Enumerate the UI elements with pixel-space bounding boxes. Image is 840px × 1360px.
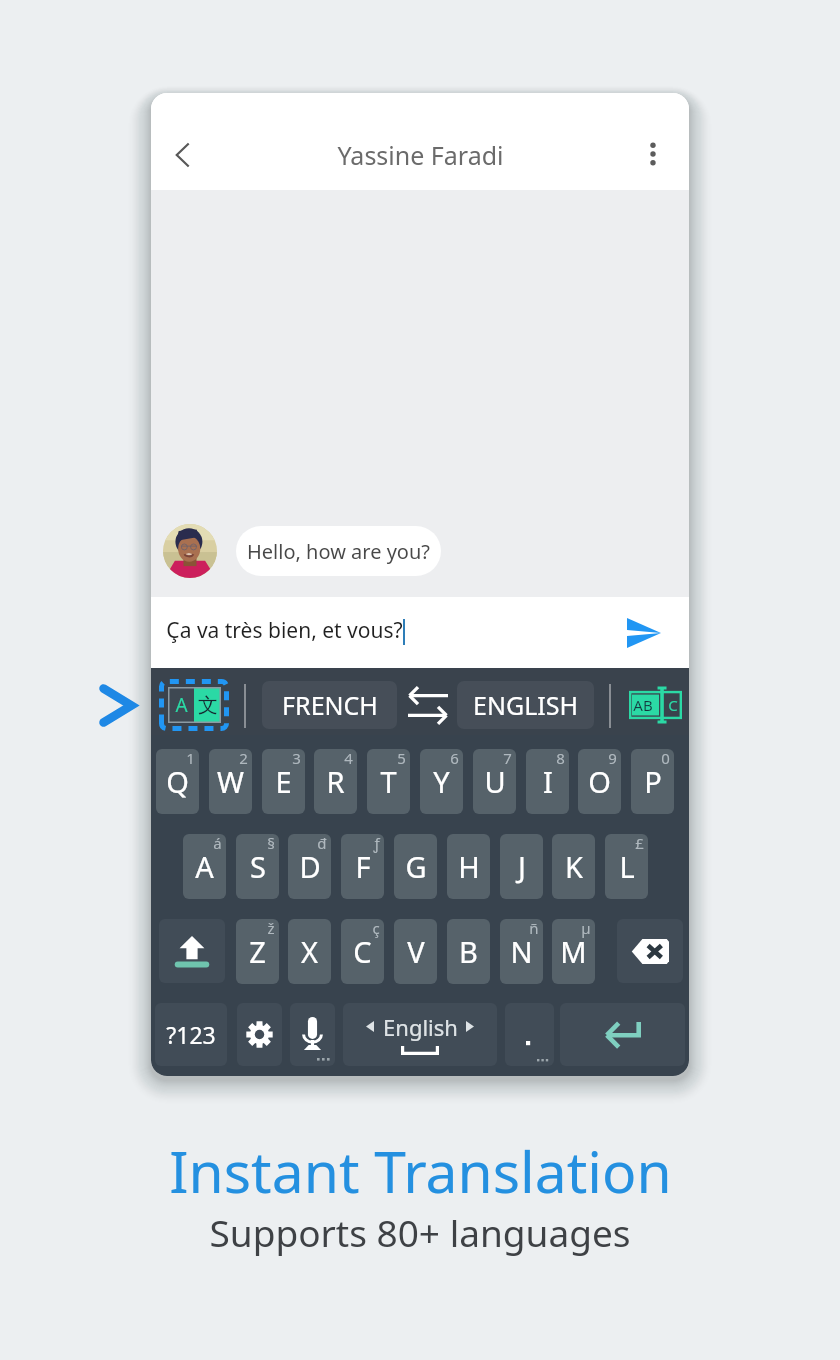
button[interactable]: P [631,749,674,814]
button[interactable]: K [552,834,595,899]
staticText: T [380,762,397,801]
staticText: H [458,847,480,886]
staticText: 4 [344,749,353,768]
staticText: B [459,932,478,971]
button[interactable]: I [526,749,569,814]
button[interactable] [505,1003,554,1066]
staticText: W [217,762,244,801]
staticText: R [326,762,345,801]
staticText: A [195,847,214,886]
staticText: ž [267,919,275,938]
button[interactable]: Enter [560,1003,685,1066]
staticText: L [619,847,635,886]
staticText: M [560,932,587,971]
staticText: ƒ [373,834,380,853]
staticText: P [644,762,662,801]
button[interactable]: J [500,834,543,899]
staticText: V [407,932,425,971]
button[interactable]: V [394,919,437,984]
button[interactable]: ?123 [155,1003,227,1066]
button[interactable]: Translate [159,679,229,731]
button[interactable]: ENGLISH [457,681,594,729]
staticText: 5 [397,749,406,768]
staticText: Hello, how are you? [247,538,430,565]
staticText: 文 [198,693,218,718]
staticText: C [353,932,372,971]
staticText: U [484,762,506,801]
staticText: I [543,762,553,801]
staticText: E [275,762,292,801]
staticText: English [383,1012,458,1042]
button[interactable]: D [288,834,331,899]
staticText: Ça va très bien, et vous? [166,616,403,645]
staticText: 6 [450,749,459,768]
button[interactable]: Send [619,608,669,658]
staticText: Z [249,932,266,971]
staticText: đ [317,834,327,853]
button[interactable]: Voice input [290,1003,335,1066]
button[interactable]: More options [628,129,678,179]
staticText: AB [633,695,653,715]
button[interactable]: G [394,834,437,899]
button[interactable]: O [578,749,621,814]
staticText: £ [635,834,644,853]
staticText: F [355,847,371,886]
button[interactable]: W [209,749,252,814]
button[interactable]: T [367,749,410,814]
button[interactable]: Back [155,127,211,183]
staticText: D [299,847,321,886]
staticText: J [518,847,526,886]
button[interactable]: R [314,749,357,814]
button[interactable]: S [236,834,279,899]
staticText: 3 [292,749,301,768]
staticText: 9 [608,749,617,768]
staticText: Yassine Faradi [337,138,504,172]
button[interactable]: Swap languages [404,682,452,728]
button[interactable]: Q [156,749,199,814]
staticText: X [301,932,318,971]
staticText: µ [581,919,591,938]
staticText: 2 [239,749,248,768]
staticText: ENGLISH [473,688,578,722]
staticText: O [588,762,611,801]
button[interactable]: FRENCH [262,681,397,729]
staticText: 8 [556,749,565,768]
staticText: S [250,847,266,886]
button[interactable]: E [262,749,305,814]
staticText: Q [166,762,189,801]
staticText: N [510,932,533,971]
staticText: 1 [186,749,195,768]
button[interactable]: Y [420,749,463,814]
staticText: Supports 80+ languages [209,1207,631,1257]
button[interactable]: F [341,834,384,899]
staticText: Y [433,762,450,801]
button[interactable]: N [500,919,543,984]
button[interactable]: C [341,919,384,984]
staticText: K [565,847,583,886]
button[interactable]: A [183,834,226,899]
staticText: ñ [529,919,539,938]
button[interactable]: B [447,919,490,984]
staticText: FRENCH [282,688,378,722]
button[interactable]: Shift [159,919,225,983]
staticText: ?123 [166,1019,216,1050]
staticText: G [405,847,427,886]
button[interactable]: M [552,919,595,984]
staticText: 7 [503,749,512,768]
button[interactable]: U [473,749,516,814]
staticText: ç [372,919,380,938]
button[interactable]: Select text [624,683,686,727]
button[interactable]: Settings [237,1003,282,1066]
staticText: A [175,692,188,718]
staticText: á [213,834,222,853]
button[interactable]: H [447,834,490,899]
staticText: § [267,834,275,853]
staticText: Instant Translation [169,1132,672,1210]
button[interactable]: English [343,1003,497,1066]
button[interactable]: L [605,834,648,899]
button[interactable]: Backspace [617,919,683,983]
staticText: C [668,695,678,715]
staticText: 0 [661,749,670,768]
button[interactable]: Z [236,919,279,984]
button[interactable]: X [288,919,331,984]
